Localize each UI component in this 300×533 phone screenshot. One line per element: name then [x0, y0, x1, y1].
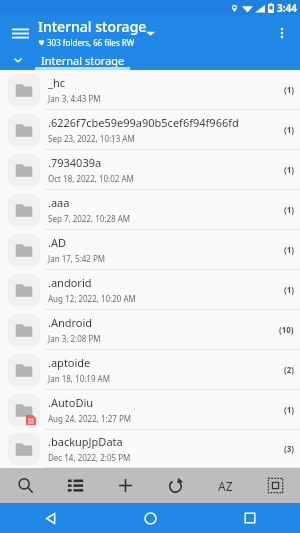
staticText: .aptoide: [48, 355, 91, 370]
button[interactable]: Expand storage options: [140, 23, 160, 43]
staticText: Jan 3, 4:43 PM: [48, 93, 101, 104]
staticText: Sep 7, 2022, 10:28 AM: [48, 213, 131, 224]
staticText: Aug 12, 2022, 10:20 AM: [48, 293, 136, 304]
staticText: (1): [284, 164, 294, 175]
button[interactable]: .AD: [0, 230, 300, 270]
button[interactable]: Home: [100, 503, 200, 533]
staticText: Sep 23, 2022, 10:13 AM: [48, 133, 135, 144]
button[interactable]: Internal storage: [35, 50, 130, 70]
staticText: Dec 14, 2022, 2:05 PM: [48, 452, 131, 463]
staticText: (1): [284, 284, 294, 295]
staticText: Oct 18, 2022, 10:02 AM: [48, 173, 134, 184]
button[interactable]: Add: [100, 468, 150, 503]
staticText: .backupJpData: [48, 434, 123, 449]
button[interactable]: .aaa: [0, 190, 300, 230]
staticText: (1): [284, 124, 294, 135]
button[interactable]: _hc: [0, 70, 300, 110]
staticText: Jan 3, 2:08 PM: [48, 333, 101, 344]
button[interactable]: Search: [0, 468, 50, 503]
staticText: Aug 24, 2022, 1:27 PM: [48, 413, 132, 424]
button[interactable]: .6226f7cbe59e99a90b5cef6f94f966fd: [0, 110, 300, 150]
staticText: .Android: [48, 315, 93, 330]
button[interactable]: .backupJpData: [0, 430, 300, 468]
staticText: (2): [284, 364, 294, 375]
button[interactable]: Recent apps: [200, 503, 300, 533]
button[interactable]: Refresh: [150, 468, 200, 503]
button[interactable]: Open navigation drawer: [6, 19, 34, 47]
button[interactable]: Collapse path: [8, 50, 28, 70]
staticText: Jan 18, 10:19 AM: [48, 373, 110, 384]
staticText: .7934039a: [48, 155, 102, 170]
button[interactable]: Sort: [200, 468, 250, 503]
button[interactable]: .7934039a: [0, 150, 300, 190]
button[interactable]: Back: [0, 503, 100, 533]
staticText: .aaa: [48, 195, 70, 210]
button[interactable]: More options: [268, 19, 296, 47]
button[interactable]: .Android: [0, 310, 300, 350]
button[interactable]: .andorid: [0, 270, 300, 310]
staticText: (3): [284, 443, 294, 454]
staticText: (1): [284, 84, 294, 95]
staticText: .AD: [48, 235, 67, 250]
button[interactable]: .aptoide: [0, 350, 300, 390]
button[interactable]: Select all: [250, 468, 300, 503]
staticText: 3:44: [277, 1, 297, 15]
button[interactable]: .AutoDiu: [0, 390, 300, 430]
staticText: Internal storage: [38, 17, 147, 36]
button[interactable]: List view: [50, 468, 100, 503]
staticText: Jan 17, 5:42 PM: [48, 253, 106, 264]
staticText: .AutoDiu: [48, 395, 94, 410]
staticText: 303 folders, 66 files RW: [47, 37, 135, 48]
staticText: (10): [279, 324, 294, 335]
staticText: (1): [284, 404, 294, 415]
staticText: .andorid: [48, 275, 92, 290]
staticText: .6226f7cbe59e99a90b5cef6f94f966fd: [48, 115, 239, 130]
staticText: AZ: [218, 478, 233, 494]
staticText: (1): [284, 204, 294, 215]
staticText: Internal storage: [41, 53, 125, 68]
staticText: _hc: [48, 75, 65, 90]
staticText: (1): [284, 244, 294, 255]
